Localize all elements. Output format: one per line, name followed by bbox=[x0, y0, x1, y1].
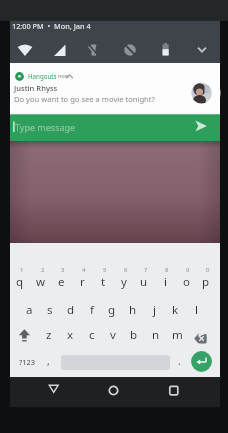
staticText: n bbox=[152, 327, 160, 343]
staticText: u bbox=[140, 274, 148, 290]
staticText: y bbox=[121, 274, 127, 290]
staticText: 12:00 PM • Mon, Jan 4 bbox=[12, 21, 91, 31]
staticText: Do you want to go see a movie tonight? bbox=[14, 94, 155, 104]
staticText: w bbox=[36, 274, 46, 290]
staticText: i bbox=[164, 274, 167, 290]
staticText: e bbox=[58, 274, 65, 290]
staticText: Justin Rhyss bbox=[14, 83, 58, 93]
staticText: p bbox=[202, 274, 210, 290]
staticText: k bbox=[172, 302, 179, 318]
staticText: . bbox=[178, 354, 181, 368]
staticText: 3 bbox=[61, 266, 65, 274]
staticText: b bbox=[130, 327, 138, 343]
staticText: 2 bbox=[41, 266, 45, 274]
staticText: g bbox=[108, 302, 116, 318]
staticText: c bbox=[89, 327, 95, 343]
staticText: 9 bbox=[186, 266, 190, 274]
staticText: t bbox=[101, 274, 106, 290]
staticText: ?123 bbox=[19, 357, 36, 367]
staticText: a bbox=[26, 302, 33, 318]
staticText: z bbox=[46, 327, 52, 343]
staticText: Hangouts bbox=[28, 72, 57, 80]
staticText: v bbox=[110, 327, 116, 343]
staticText: d bbox=[67, 302, 75, 318]
staticText: h bbox=[129, 302, 137, 318]
staticText: 6 bbox=[124, 266, 128, 274]
staticText: • now bbox=[54, 72, 70, 80]
staticText: r bbox=[80, 274, 85, 290]
staticText: f bbox=[90, 302, 94, 318]
staticText: 7 bbox=[144, 266, 148, 274]
staticText: Type message bbox=[15, 121, 76, 133]
staticText: q bbox=[16, 274, 24, 290]
staticText: j bbox=[153, 302, 156, 318]
staticText: 0 bbox=[206, 266, 210, 274]
staticText: l bbox=[195, 302, 198, 318]
staticText: m bbox=[172, 327, 183, 343]
staticText: 1 bbox=[20, 266, 24, 274]
staticText: 8 bbox=[165, 266, 169, 274]
staticText: 5 bbox=[103, 266, 107, 274]
staticText: , bbox=[47, 354, 50, 368]
staticText: s bbox=[47, 302, 53, 318]
staticText: x bbox=[67, 327, 74, 343]
staticText: o bbox=[183, 274, 190, 290]
staticText: 4 bbox=[82, 266, 86, 274]
